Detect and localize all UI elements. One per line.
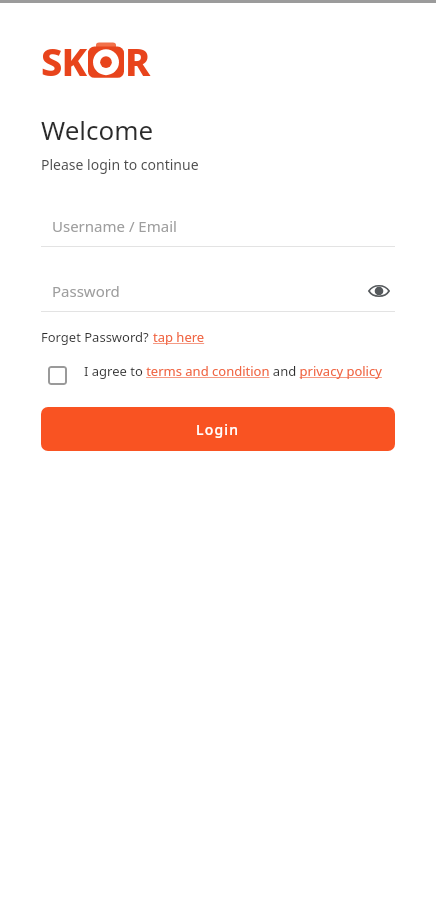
staticText: Password [52,281,363,301]
staticText: Please login to continue [41,155,199,174]
button[interactable]: Agree to terms [41,362,395,385]
other: Agree to terms [48,366,67,385]
staticText: tap here [153,328,205,346]
staticText: Forget Password? [41,328,153,346]
button[interactable]: Username / Email [41,206,395,247]
button[interactable]: Show password [363,275,395,307]
button[interactable]: Forget Password? [41,328,205,346]
staticText: Login [196,420,240,439]
staticText: I agree to terms and condition and priva… [84,362,382,380]
button[interactable]: Login [41,407,395,451]
staticText: Welcome [41,112,154,147]
staticText: R [125,35,150,87]
button[interactable]: Password [41,271,395,312]
staticText: Username / Email [52,216,177,236]
staticText: SK [41,35,87,87]
